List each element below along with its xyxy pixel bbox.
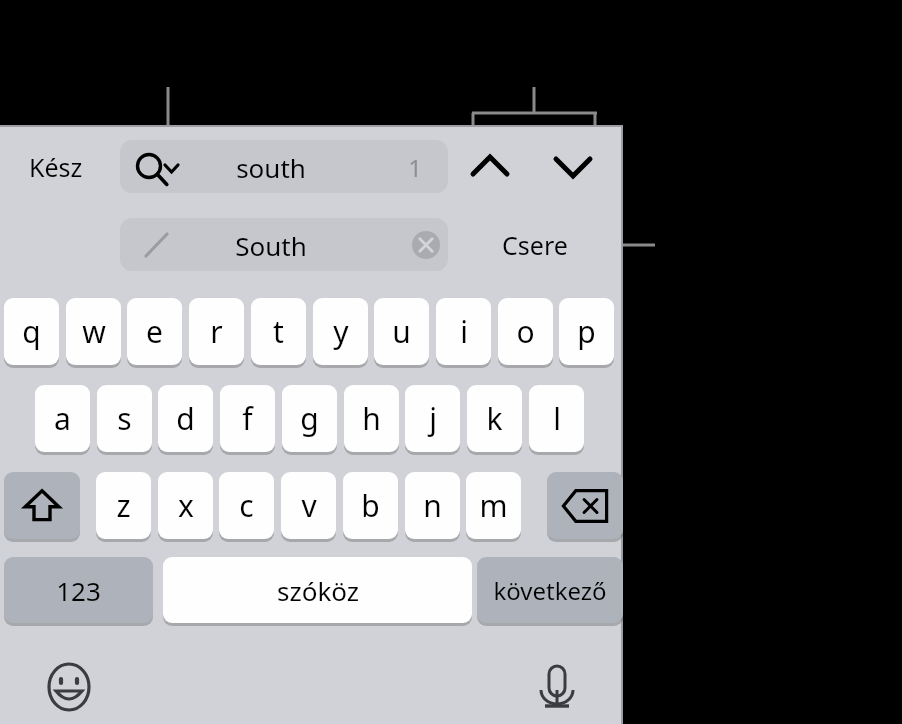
- staticText: r: [210, 311, 223, 352]
- button[interactable]: u: [374, 298, 429, 365]
- button[interactable]: [120, 218, 448, 271]
- staticText: h: [362, 398, 381, 439]
- staticText: South: [235, 228, 307, 263]
- button[interactable]: Emoji: [40, 658, 98, 716]
- staticText: k: [486, 398, 503, 439]
- button[interactable]: 123: [4, 557, 153, 623]
- staticText: south: [236, 150, 306, 185]
- staticText: m: [479, 485, 508, 526]
- button[interactable]: c: [219, 472, 274, 539]
- button[interactable]: Shift: [4, 472, 80, 539]
- button[interactable]: h: [344, 385, 399, 452]
- button[interactable]: Kész: [16, 144, 96, 190]
- button[interactable]: Next result: [545, 142, 601, 192]
- button[interactable]: n: [405, 472, 460, 539]
- staticText: d: [176, 398, 195, 439]
- staticText: s: [117, 398, 132, 439]
- button[interactable]: v: [281, 472, 336, 539]
- button[interactable]: f: [220, 385, 275, 452]
- staticText: szóköz: [277, 573, 359, 608]
- staticText: y: [333, 311, 349, 352]
- button[interactable]: d: [158, 385, 213, 452]
- staticText: f: [242, 398, 253, 439]
- button[interactable]: j: [405, 385, 460, 452]
- staticText: Csere: [502, 228, 568, 262]
- button[interactable]: x: [158, 472, 213, 539]
- button[interactable]: s: [97, 385, 152, 452]
- staticText: u: [392, 311, 411, 352]
- staticText: o: [516, 311, 535, 352]
- staticText: l: [553, 398, 561, 439]
- staticText: i: [460, 311, 468, 352]
- button[interactable]: Search options: [132, 148, 184, 186]
- staticText: x: [178, 485, 194, 526]
- button[interactable]: Clear replace text: [411, 230, 441, 260]
- button[interactable]: y: [313, 298, 368, 365]
- staticText: t: [273, 311, 284, 352]
- button[interactable]: t: [251, 298, 306, 365]
- button[interactable]: a: [35, 385, 90, 452]
- staticText: g: [300, 398, 319, 439]
- staticText: p: [577, 311, 596, 352]
- button[interactable]: [4, 472, 80, 539]
- button[interactable]: q: [4, 298, 59, 365]
- button[interactable]: b: [343, 472, 398, 539]
- staticText: b: [361, 485, 380, 526]
- button[interactable]: Csere: [490, 222, 580, 268]
- button[interactable]: Backspace: [547, 472, 623, 539]
- staticText: a: [54, 398, 71, 439]
- button[interactable]: i: [436, 298, 491, 365]
- button[interactable]: p: [559, 298, 614, 365]
- button[interactable]: következő: [477, 557, 623, 623]
- button[interactable]: Dictate: [528, 658, 586, 716]
- button[interactable]: e: [127, 298, 182, 365]
- button[interactable]: z: [96, 472, 151, 539]
- staticText: j: [429, 398, 437, 439]
- staticText: q: [22, 311, 41, 352]
- button[interactable]: l: [529, 385, 584, 452]
- staticText: w: [82, 311, 106, 352]
- button[interactable]: m: [466, 472, 521, 539]
- button[interactable]: [547, 472, 623, 539]
- button[interactable]: o: [498, 298, 553, 365]
- staticText: 123: [56, 573, 101, 608]
- staticText: v: [301, 485, 317, 526]
- staticText: 1: [408, 151, 422, 184]
- button[interactable]: w: [66, 298, 121, 365]
- staticText: következő: [493, 574, 607, 607]
- button[interactable]: Previous result: [462, 142, 518, 192]
- staticText: c: [239, 485, 254, 526]
- button[interactable]: r: [189, 298, 244, 365]
- button[interactable]: g: [282, 385, 337, 452]
- staticText: z: [116, 485, 131, 526]
- button[interactable]: k: [467, 385, 522, 452]
- staticText: Kész: [29, 150, 83, 184]
- button[interactable]: szóköz: [163, 557, 472, 623]
- staticText: e: [146, 311, 163, 352]
- button[interactable]: [120, 140, 448, 193]
- staticText: n: [423, 485, 442, 526]
